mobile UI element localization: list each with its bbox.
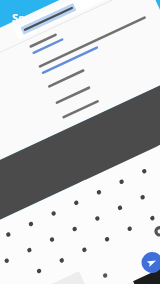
staticText: with auto-complete xyxy=(26,25,134,40)
staticText: Search fast and type less xyxy=(12,10,148,25)
button[interactable]: App screenshot preview xyxy=(0,0,160,284)
